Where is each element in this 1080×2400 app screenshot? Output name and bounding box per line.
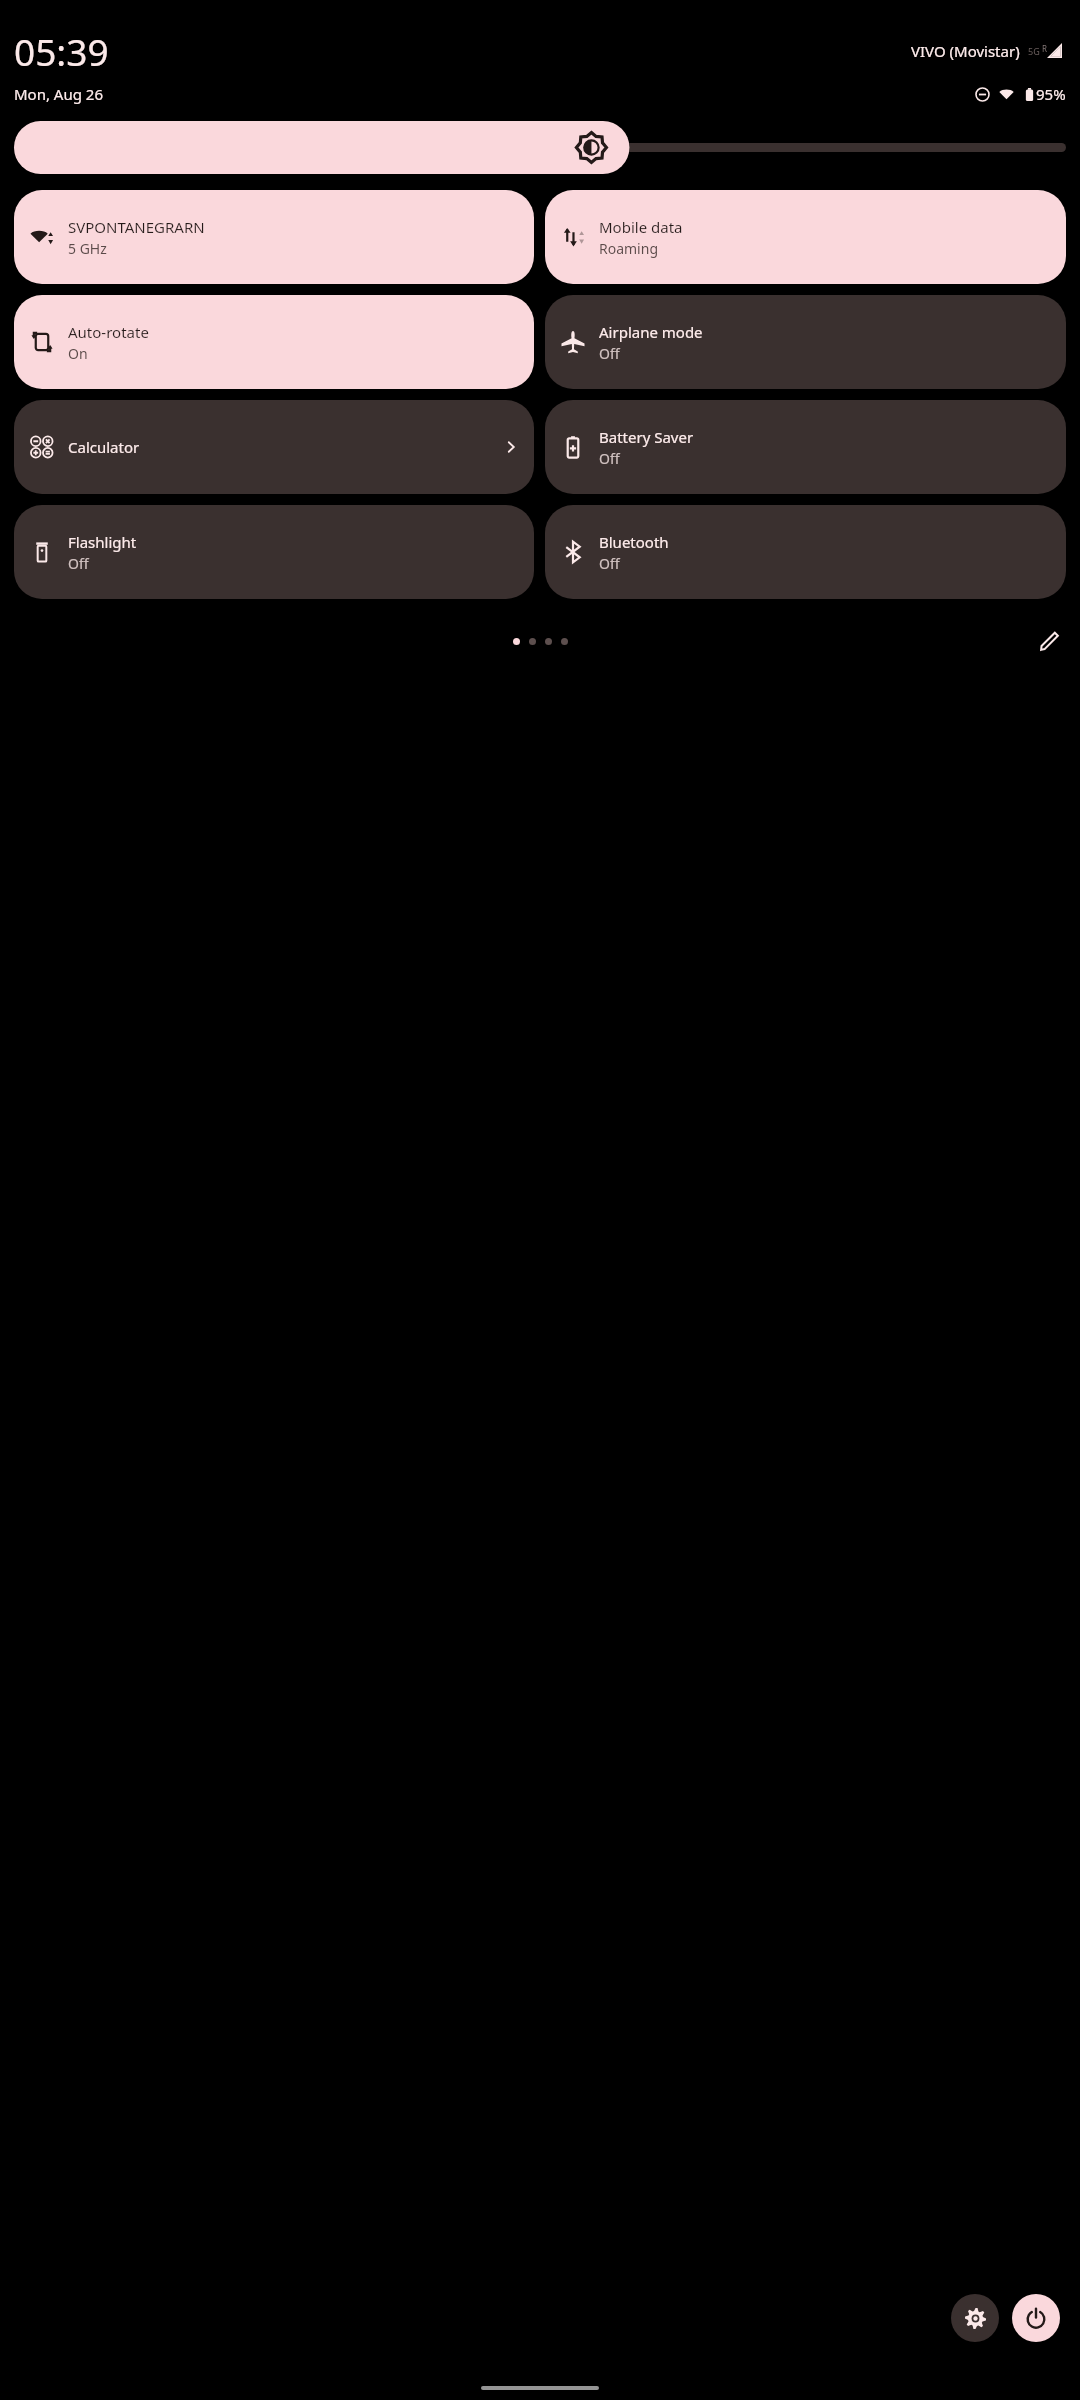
- button[interactable]: Mobile data: [545, 190, 1066, 284]
- button[interactable]: SVPONTANEGRARN: [14, 190, 534, 284]
- staticText: Off: [599, 449, 620, 468]
- button[interactable]: Settings: [951, 2294, 999, 2342]
- button[interactable]: Calculator: [14, 400, 534, 494]
- staticText: Airplane mode: [599, 322, 703, 342]
- staticText: Roaming: [599, 239, 658, 258]
- staticText: On: [68, 344, 88, 363]
- staticText: Flashlight: [68, 532, 137, 552]
- button[interactable]: Flashlight: [14, 505, 534, 599]
- button[interactable]: Battery Saver: [545, 400, 1066, 494]
- button[interactable]: Airplane mode: [545, 295, 1066, 389]
- staticText: Auto-rotate: [68, 322, 149, 342]
- staticText: Mobile data: [599, 217, 683, 237]
- staticText: 5 GHz: [68, 239, 107, 258]
- staticText: 95%: [1036, 84, 1066, 104]
- staticText: Off: [599, 554, 620, 573]
- staticText: VIVO (Movistar): [911, 41, 1020, 61]
- staticText: Bluetooth: [599, 532, 669, 552]
- staticText: Off: [68, 554, 89, 573]
- staticText: Off: [599, 344, 620, 363]
- staticText: SVPONTANEGRARN: [68, 217, 205, 237]
- button[interactable]: Power: [1012, 2294, 1060, 2342]
- staticText: 5G: [1028, 45, 1040, 57]
- staticText: Battery Saver: [599, 427, 694, 447]
- staticText: R: [1042, 43, 1047, 54]
- staticText: Mon, Aug 26: [14, 84, 104, 104]
- button[interactable]: Auto-rotate: [14, 295, 534, 389]
- button[interactable]: Edit tiles: [1032, 624, 1066, 658]
- button[interactable]: Bluetooth: [545, 505, 1066, 599]
- staticText: 05:39: [14, 26, 109, 76]
- button[interactable]: Brightness: [14, 121, 1066, 174]
- staticText: Calculator: [68, 437, 140, 457]
